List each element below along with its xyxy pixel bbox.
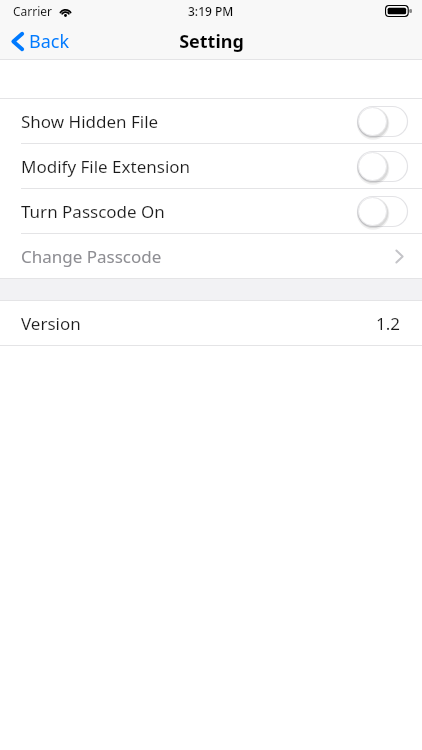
staticText: Change Passcode (21, 245, 162, 268)
staticText: Turn Passcode On (21, 200, 165, 223)
staticText: Version (21, 312, 81, 335)
staticText: Modify File Extension (21, 155, 191, 178)
button[interactable]: Toggle off (357, 106, 408, 137)
button[interactable]: Toggle off (357, 151, 408, 182)
staticText: Back (29, 29, 70, 54)
button[interactable]: Modify File Extension (0, 144, 422, 188)
button[interactable]: Show Hidden File (0, 99, 422, 143)
staticText: 3:19 PM (188, 3, 234, 19)
staticText: 1.2 (376, 312, 401, 335)
button[interactable]: Toggle off (357, 196, 408, 227)
staticText: Carrier (13, 3, 53, 19)
button[interactable]: Turn Passcode On (0, 189, 422, 233)
button[interactable]: Back (0, 25, 82, 58)
button[interactable]: Change Passcode (0, 234, 422, 278)
staticText: Setting (179, 29, 244, 54)
staticText: Show Hidden File (21, 110, 159, 133)
button[interactable]: Version (0, 301, 422, 345)
